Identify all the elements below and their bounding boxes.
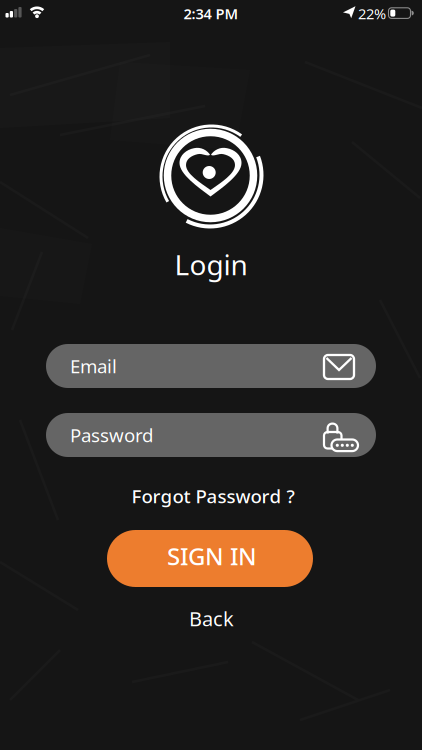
staticText: 2:34 PM	[183, 4, 238, 23]
button[interactable]: Forgot Password ?	[131, 484, 294, 508]
button[interactable]: Email	[46, 344, 376, 388]
staticText: 22%	[358, 4, 386, 23]
button[interactable]: SIGN IN	[107, 530, 313, 587]
staticText: Email	[70, 354, 117, 378]
staticText: Back	[189, 605, 234, 632]
staticText: SIGN IN	[167, 540, 257, 572]
staticText: Forgot Password ?	[131, 484, 294, 508]
button[interactable]: Back	[189, 605, 234, 632]
staticText: Password	[70, 423, 153, 447]
staticText: Login	[174, 246, 247, 283]
button[interactable]: Password	[46, 413, 376, 457]
